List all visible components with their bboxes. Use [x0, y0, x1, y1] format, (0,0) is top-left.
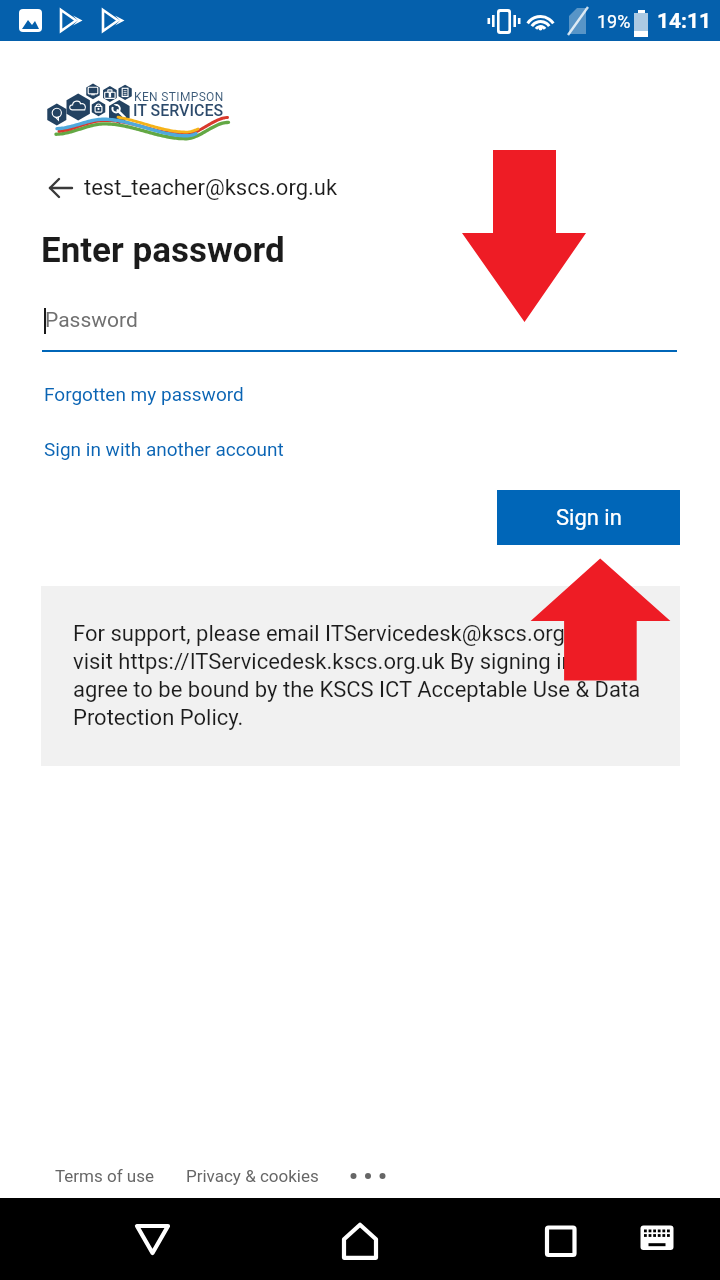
button[interactable]: More options — [350, 1165, 386, 1187]
button[interactable]: Forgotten my password — [44, 383, 244, 405]
other: Back — [44, 170, 78, 206]
staticText: Password — [45, 308, 138, 333]
staticText: For support, please email ITServicedesk@… — [73, 621, 641, 731]
staticText: KEN STIMPSON — [134, 90, 224, 104]
staticText: test_teacher@kscs.org.uk — [84, 175, 338, 201]
button[interactable]: Terms of use — [55, 1166, 154, 1186]
button[interactable]: Sign in with another account — [44, 438, 284, 460]
staticText: 19% — [597, 11, 631, 32]
button[interactable]: Sign in — [497, 490, 680, 545]
button[interactable]: Back — [44, 170, 338, 206]
staticText: Sign in — [556, 505, 622, 531]
staticText: 14:11 — [657, 9, 712, 34]
staticText: IT SERVICES — [133, 101, 224, 120]
staticText: Enter password — [41, 230, 285, 271]
button[interactable]: Privacy & cookies — [186, 1166, 319, 1186]
